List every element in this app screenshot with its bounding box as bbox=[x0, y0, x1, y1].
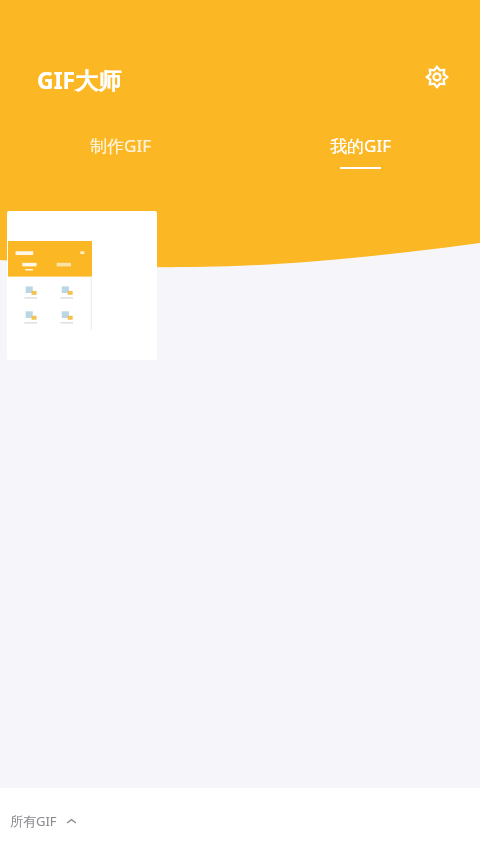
staticText: 制作GIF bbox=[90, 134, 151, 157]
button[interactable]: Settings bbox=[421, 61, 453, 93]
staticText: 我的GIF bbox=[330, 134, 391, 157]
staticText: GIF大师 bbox=[37, 64, 122, 95]
button[interactable]: 制作GIF bbox=[0, 134, 240, 188]
staticText: 所有GIF bbox=[10, 812, 57, 830]
button[interactable]: 所有GIF bbox=[10, 812, 77, 830]
button[interactable] bbox=[7, 211, 157, 360]
button[interactable]: 我的GIF bbox=[240, 134, 480, 188]
